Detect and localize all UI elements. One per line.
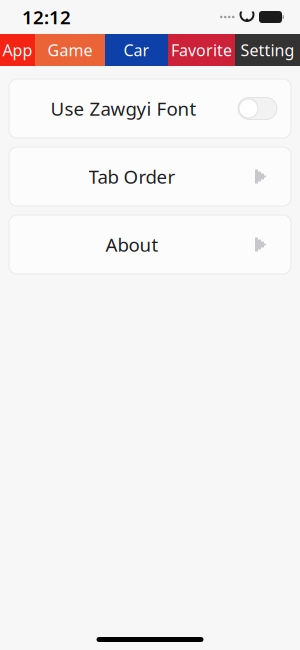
button[interactable]: Game [35,34,105,66]
button[interactable]: Use Zawgyi Font [9,79,291,138]
staticText: Favorite [171,39,232,61]
staticText: App [2,39,32,61]
button[interactable]: Setting [235,34,300,66]
staticText: Car [123,39,149,61]
button[interactable]: About [9,215,291,274]
button[interactable]: Favorite [168,34,235,66]
staticText: About [105,232,158,257]
staticText: Tab Order [88,164,175,189]
staticText: 12:12 [22,5,71,29]
staticText: Use Zawgyi Font [50,96,196,121]
button[interactable]: Car [105,34,168,66]
staticText: Setting [240,39,294,61]
button[interactable]: App [0,34,35,66]
button[interactable]: Tab Order [9,147,291,206]
staticText: Game [47,39,92,61]
